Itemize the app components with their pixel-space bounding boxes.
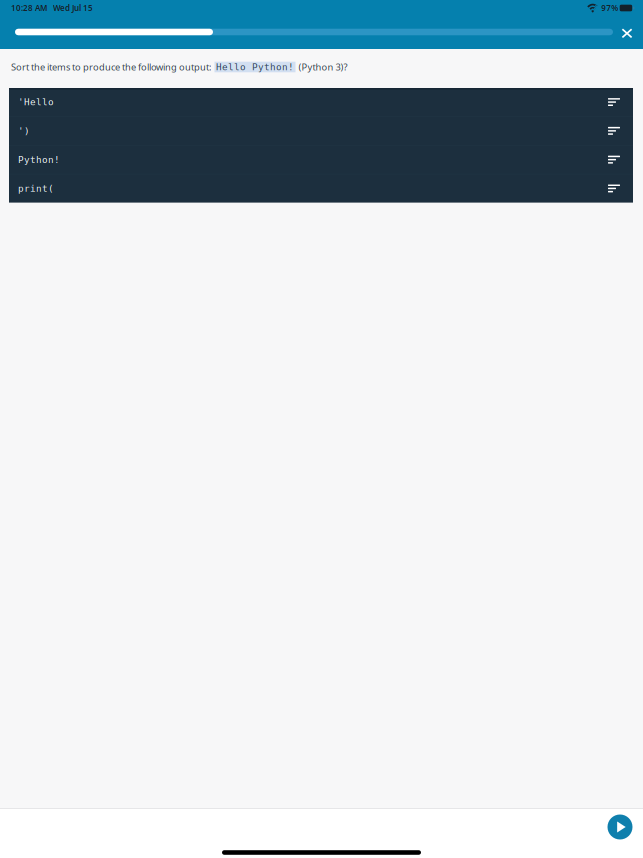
staticText: 10:28 AM — [11, 3, 47, 13]
staticText: ') — [18, 126, 30, 136]
staticText: 97% — [601, 3, 618, 13]
staticText: print( — [18, 183, 54, 194]
button[interactable]: Run — [602, 809, 638, 845]
button[interactable]: Close — [614, 19, 640, 45]
staticText: Sort the items to produce the following … — [11, 61, 212, 73]
button[interactable]: ') — [9, 117, 633, 145]
button[interactable]: Python! — [9, 146, 633, 174]
button[interactable]: print( — [9, 174, 633, 203]
staticText: Hello Python! — [216, 62, 294, 72]
staticText: Wed Jul 15 — [53, 3, 93, 13]
staticText: Python! — [18, 154, 60, 165]
staticText: (Python 3)? — [296, 61, 347, 73]
staticText: 'Hello — [18, 97, 54, 107]
button[interactable]: 'Hello — [9, 88, 633, 116]
